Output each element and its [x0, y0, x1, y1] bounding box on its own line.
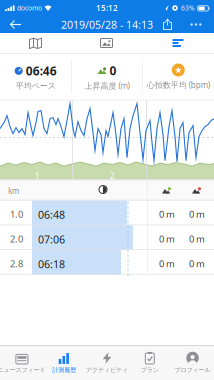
staticText: 0 m [159, 257, 175, 270]
staticText: 15:12 [96, 3, 118, 13]
staticText: 07:06 [38, 232, 65, 246]
staticText: アクティビティ [86, 366, 128, 374]
button[interactable]: Photos [71, 33, 142, 53]
staticText: 06:46 [26, 63, 57, 79]
staticText: 2019/05/28 - 14:13 [61, 17, 153, 32]
staticText: 2 [110, 171, 115, 181]
button[interactable]: Back [0, 20, 22, 29]
button[interactable]: 計測履歴 [43, 346, 86, 380]
button[interactable]: Map [0, 33, 71, 53]
staticText: 06:18 [38, 257, 65, 271]
button[interactable]: ニュースフィード [0, 346, 43, 380]
staticText: docomo [17, 4, 42, 12]
staticText: 上昇高度 (m) [84, 80, 129, 91]
staticText: 63% [181, 4, 195, 12]
staticText: 平均ペース [16, 81, 56, 91]
button[interactable]: プラン [128, 346, 171, 380]
staticText: 0 m [189, 257, 205, 270]
button[interactable]: Share [163, 19, 190, 30]
staticText: 心拍数平均 (bpm) [147, 79, 210, 90]
staticText: 0 m [159, 208, 175, 220]
staticText: 0 m [159, 233, 175, 245]
staticText: 0 m [189, 233, 205, 245]
button[interactable]: Charts [142, 33, 214, 53]
staticText: プロフィール [175, 366, 211, 374]
button[interactable]: アクティビティ [86, 346, 128, 380]
staticText: 06:48 [38, 207, 65, 222]
staticText: 2.8 [10, 257, 23, 270]
staticText: ニュースフィード [0, 366, 45, 374]
staticText: km [8, 185, 19, 196]
staticText: プラン [141, 366, 159, 374]
staticText: 2.0 [10, 233, 23, 245]
staticText: 1.0 [10, 208, 23, 220]
staticText: 0 m [189, 208, 205, 220]
button[interactable]: プロフィール [171, 346, 214, 380]
staticText: 1 [35, 171, 40, 181]
staticText: 計測履歴 [52, 366, 76, 374]
button[interactable]: More [190, 23, 214, 26]
staticText: 0 [109, 62, 116, 78]
